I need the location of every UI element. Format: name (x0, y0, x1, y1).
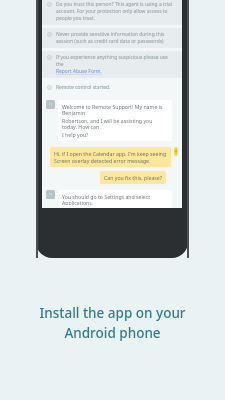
button[interactable]: Agent avatar (46, 100, 172, 141)
staticText: Android phone (64, 324, 161, 342)
other: User avatar (174, 147, 178, 156)
staticText: Can you fix this, please? (104, 174, 162, 181)
staticText: Do you trust this person? This agent is … (56, 1, 172, 8)
staticText: Remote control started. (56, 84, 111, 91)
staticText: Robertson, and I will be assisting you t… (62, 117, 168, 131)
button[interactable]: Can you fix this, please? (50, 171, 178, 184)
button[interactable]: Report Abuse Form. (56, 68, 102, 75)
staticText: Never provide sensitive information duri… (56, 31, 165, 38)
staticText: You should go to Settings and select App… (62, 193, 168, 205)
staticText: I help you? (62, 131, 89, 138)
staticText: Screen overlay detected error message. (54, 157, 151, 164)
staticText: people you trust. (56, 15, 95, 22)
staticText: Welcome to Remote Support! My name is Be… (62, 103, 168, 117)
staticText: Hi, if I open the Calendar app, I'm keep… (54, 150, 167, 157)
staticText: account. For your protection only allow … (56, 8, 168, 15)
staticText: If you experience anything suspicious pl… (56, 54, 176, 68)
button[interactable]: Hi, if I open the Calendar app, I'm keep… (50, 147, 178, 167)
staticText: session (such as credit card data or pas… (56, 38, 164, 45)
button[interactable]: Agent avatar (46, 190, 172, 208)
staticText: Report Abuse Form. (56, 68, 102, 75)
staticText: Install the app on your (39, 304, 186, 322)
other: Agent avatar (46, 190, 55, 199)
other: Agent avatar (46, 100, 55, 109)
